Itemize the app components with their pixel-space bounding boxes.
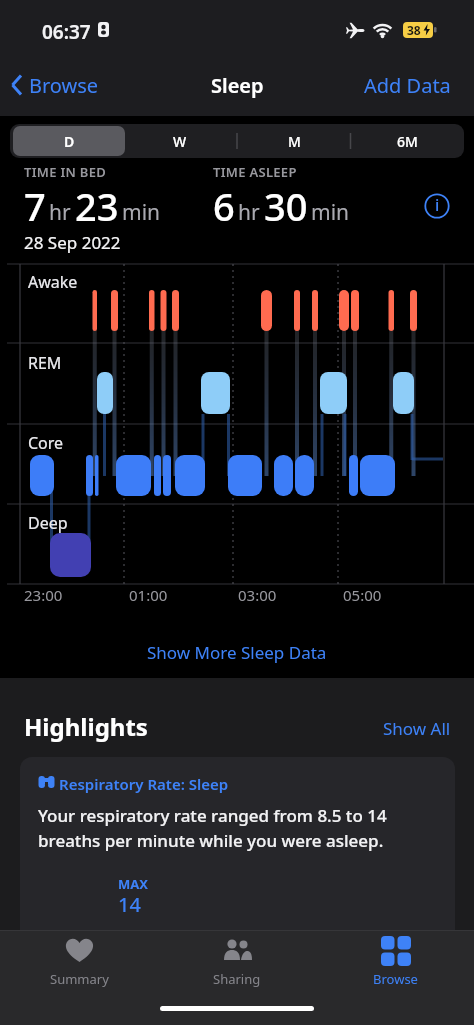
staticText: 23 (75, 180, 119, 232)
staticText: Browse (29, 72, 99, 99)
staticText: REM (28, 352, 62, 374)
staticText: i (435, 194, 440, 216)
staticText: Summary (50, 970, 109, 988)
staticText: 7 (24, 180, 46, 232)
staticText: Respiratory Rate: Sleep (59, 774, 229, 794)
button[interactable]: Show More Sleep Data (0, 636, 474, 668)
staticText: Add Data (364, 72, 451, 99)
staticText: Deep (28, 512, 68, 534)
staticText: Show All (383, 717, 451, 740)
button[interactable]: Browse (316, 936, 474, 988)
staticText: 6 (213, 180, 235, 232)
staticText: MAX (118, 875, 148, 893)
button[interactable]: M (237, 124, 351, 158)
staticText: 01:00 (129, 585, 168, 605)
button[interactable]: Respiratory Rate: Sleep (20, 757, 455, 1025)
button[interactable]: W (123, 124, 237, 158)
staticText: Awake (28, 271, 78, 293)
staticText: 14 (118, 891, 141, 918)
staticText: W (173, 132, 187, 151)
button[interactable]: D (13, 126, 125, 156)
staticText: 38 (407, 22, 421, 38)
staticText: hr (238, 198, 260, 227)
staticText: 06:37 (42, 19, 91, 45)
staticText: Show More Sleep Data (147, 641, 327, 664)
staticText: 6M (397, 132, 418, 151)
staticText: 05:00 (343, 585, 382, 605)
staticText: 28 Sep 2022 (24, 231, 121, 254)
staticText: Highlights (24, 710, 148, 743)
staticText: Core (28, 432, 64, 454)
staticText: D (64, 132, 75, 151)
staticText: min (311, 198, 350, 227)
staticText: TIME IN BED (24, 163, 107, 181)
staticText: min (122, 198, 161, 227)
button[interactable]: Summary (0, 936, 158, 988)
staticText: 03:00 (238, 585, 277, 605)
button[interactable]: Browse (10, 60, 99, 110)
staticText: Your respiratory rate ranged from 8.5 to… (38, 804, 387, 827)
staticText: TIME ASLEEP (213, 163, 297, 181)
button[interactable]: Sharing (158, 936, 316, 988)
staticText: M (288, 132, 301, 151)
staticText: 30 (264, 180, 308, 232)
staticText: 23:00 (24, 585, 63, 605)
staticText: Browse (373, 970, 418, 988)
button[interactable]: i (424, 193, 450, 219)
button[interactable]: 6M (351, 124, 464, 158)
staticText: breaths per minute while you were asleep… (38, 829, 384, 852)
button[interactable]: Add Data (364, 72, 451, 99)
staticText: Sleep (211, 72, 264, 99)
staticText: hr (49, 198, 71, 227)
button[interactable]: Show All (383, 717, 451, 740)
staticText: Sharing (213, 970, 261, 988)
